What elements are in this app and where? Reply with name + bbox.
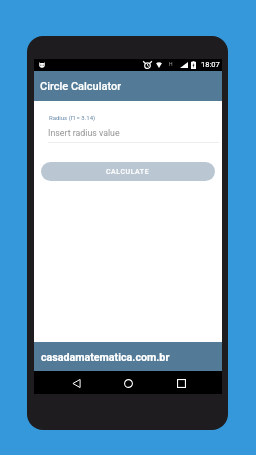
staticText: Circle Calculator: [40, 80, 122, 93]
staticText: H: [169, 61, 173, 67]
button[interactable]: casadamatematica.com.br: [34, 342, 222, 371]
staticText: casadamatematica.com.br: [41, 351, 170, 364]
button[interactable]: Recent apps: [170, 372, 192, 394]
staticText: CALCULATE: [106, 168, 150, 176]
button[interactable]: Radius (Π = 3.14): [48, 110, 219, 143]
staticText: Radius (Π = 3.14): [49, 114, 96, 121]
button[interactable]: Home: [117, 372, 139, 394]
staticText: 18:07: [201, 60, 220, 69]
button[interactable]: CALCULATE: [41, 162, 215, 181]
staticText: Insert radius value: [48, 128, 120, 138]
button[interactable]: Circle Calculator: [34, 71, 222, 101]
button[interactable]: Back: [65, 372, 87, 394]
